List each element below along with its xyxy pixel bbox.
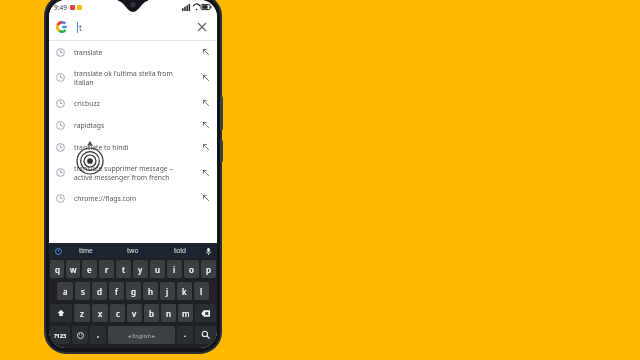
button[interactable]: ◂ English ▸ <box>108 326 175 344</box>
button[interactable]: b <box>144 304 159 322</box>
staticText: p <box>206 264 211 275</box>
staticText: b <box>149 308 154 319</box>
staticText: . <box>184 330 186 340</box>
staticText: chrome://flags.com <box>74 194 198 203</box>
other: Insert suggestion <box>202 194 210 202</box>
button[interactable]: time <box>63 243 109 258</box>
staticText: g <box>131 286 136 297</box>
staticText: o <box>189 264 194 275</box>
button[interactable]: s <box>75 282 90 300</box>
button[interactable]: . <box>177 326 193 344</box>
button[interactable]: , <box>90 326 106 344</box>
button[interactable]: translate to hindi <box>49 136 217 158</box>
button[interactable]: a <box>57 282 73 300</box>
button[interactable]: i <box>167 260 182 278</box>
staticText: n <box>166 308 172 319</box>
button[interactable]: translate ok l'ultima stella from italia… <box>49 63 217 92</box>
staticText: i <box>173 264 176 275</box>
staticText: ◂ English ▸ <box>128 332 156 339</box>
button[interactable]: translate <box>49 41 217 63</box>
staticText: r <box>105 264 109 275</box>
staticText: z <box>80 308 84 319</box>
button[interactable]: Emoji <box>72 326 88 344</box>
button[interactable]: rapidtags <box>49 114 217 136</box>
button[interactable]: r <box>99 260 114 278</box>
button[interactable]: chrome://flags.com <box>49 187 217 209</box>
button[interactable]: two <box>109 243 156 258</box>
staticText: j <box>166 286 169 297</box>
button[interactable]: y <box>133 260 148 278</box>
button[interactable]: j <box>160 282 175 300</box>
staticText: f <box>115 286 118 297</box>
staticText: h <box>148 286 154 297</box>
button[interactable]: Voice input <box>203 246 213 256</box>
other: Insert suggestion <box>202 99 210 107</box>
button[interactable]: u <box>150 260 165 278</box>
button[interactable]: h <box>143 282 158 300</box>
button[interactable]: Backspace <box>195 304 216 322</box>
button[interactable]: d <box>92 282 107 300</box>
button[interactable]: z <box>74 304 90 322</box>
button[interactable]: Clear search <box>194 19 210 35</box>
button[interactable]: c <box>110 304 125 322</box>
staticText: w <box>70 264 77 275</box>
staticText: time <box>79 246 93 255</box>
button[interactable]: n <box>161 304 176 322</box>
button[interactable]: e <box>82 260 97 278</box>
button[interactable]: cricbuzz <box>49 92 217 114</box>
staticText: translate <box>74 48 198 57</box>
button[interactable]: translate supprimer message – activé mes… <box>49 158 217 187</box>
staticText: u <box>155 264 161 275</box>
staticText: two <box>127 246 139 255</box>
other: Insert suggestion <box>202 169 210 177</box>
staticText: s <box>81 286 85 297</box>
staticText: t <box>122 264 126 275</box>
button[interactable]: q <box>50 260 64 278</box>
staticText: m <box>182 308 190 319</box>
button[interactable]: f <box>109 282 124 300</box>
button[interactable]: o <box>184 260 199 278</box>
staticText: told <box>174 246 186 255</box>
staticText: c <box>116 308 120 319</box>
button[interactable]: m <box>178 304 193 322</box>
staticText: q <box>55 264 60 275</box>
button[interactable]: ?123 <box>50 326 70 344</box>
staticText: t <box>79 22 82 33</box>
staticText: a <box>63 286 68 297</box>
button[interactable]: t <box>116 260 131 278</box>
staticText: cricbuzz <box>74 99 198 108</box>
button[interactable]: g <box>126 282 141 300</box>
staticText: k <box>182 286 187 297</box>
button[interactable]: v <box>127 304 142 322</box>
other: Insert suggestion <box>202 48 210 56</box>
staticText: l <box>200 286 203 297</box>
staticText: y <box>138 264 143 275</box>
staticText: v <box>132 308 137 319</box>
button[interactable]: k <box>177 282 192 300</box>
button[interactable]: t <box>49 14 217 40</box>
button[interactable]: Shift <box>50 304 72 322</box>
staticText: e <box>87 264 92 275</box>
other: Insert suggestion <box>202 121 210 129</box>
button[interactable]: l <box>194 282 209 300</box>
staticText: d <box>97 286 102 297</box>
staticText: x <box>98 308 103 319</box>
other: Insert suggestion <box>202 143 210 151</box>
staticText: translate ok l'ultima stella from italia… <box>74 69 198 87</box>
button[interactable]: x <box>92 304 108 322</box>
button[interactable]: p <box>201 260 216 278</box>
staticText: , <box>97 330 99 340</box>
staticText: 9:49 <box>54 3 67 12</box>
button[interactable]: w <box>66 260 80 278</box>
button[interactable]: Clipboard <box>53 246 63 256</box>
staticText: translate to hindi <box>74 143 198 152</box>
staticText: rapidtags <box>74 121 198 130</box>
staticText: ?123 <box>54 332 67 339</box>
other: Insert suggestion <box>202 74 210 82</box>
button[interactable]: told <box>156 243 203 258</box>
staticText: translate supprimer message – activé mes… <box>74 164 198 182</box>
button[interactable]: Search <box>195 326 216 344</box>
